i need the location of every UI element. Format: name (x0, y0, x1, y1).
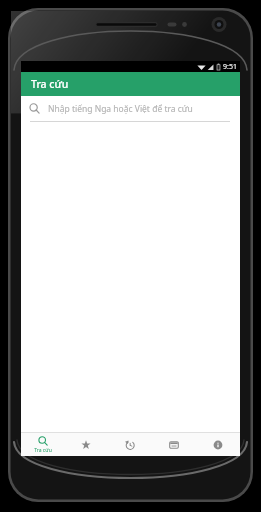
button[interactable]: Search (21, 96, 240, 122)
button[interactable]: Thẻ ghi nhớ (152, 433, 196, 456)
staticText: 9:51 (223, 62, 237, 72)
staticText: Tra cứu (34, 447, 52, 454)
other: Tra cứu (38, 436, 48, 446)
button[interactable]: Lịch sử (108, 433, 152, 456)
button[interactable]: Yêu thích (64, 433, 108, 456)
button[interactable]: Tra cứu (21, 433, 64, 456)
other: Search (29, 103, 40, 114)
staticText: Tra cứu (31, 77, 69, 91)
button[interactable]: Thông tin (196, 433, 240, 456)
staticText: Nhập tiếng Nga hoặc Việt để tra cứu (48, 103, 193, 115)
